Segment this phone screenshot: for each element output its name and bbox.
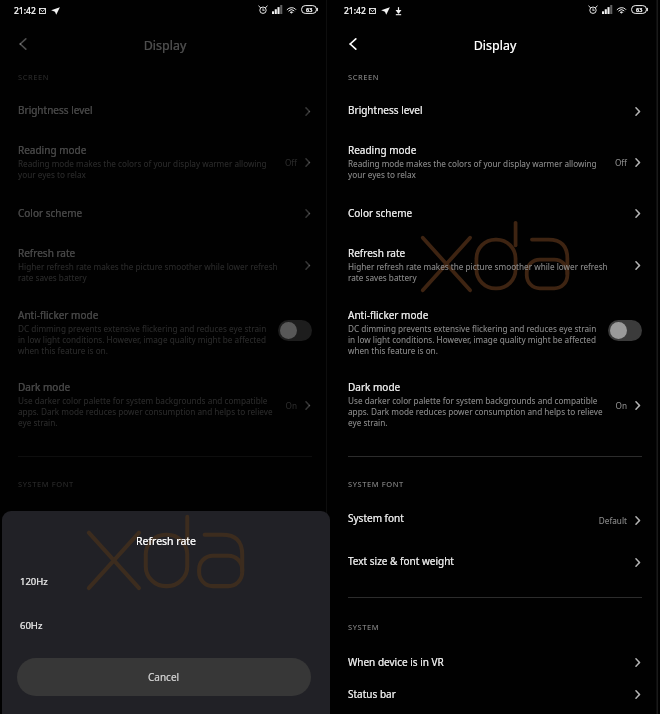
staticText: Reading mode makes the colors of your di…	[348, 158, 597, 180]
staticText: DC dimming prevents extensive flickering…	[18, 323, 267, 356]
button[interactable]: Dark mode	[330, 380, 660, 430]
staticText: SCREEN	[18, 72, 50, 82]
button[interactable]: Toggle Anti-flicker mode	[278, 320, 312, 341]
staticText: 60Hz	[20, 619, 43, 632]
staticText: Color scheme	[348, 206, 413, 220]
staticText: 21:42	[344, 5, 366, 17]
staticText: Dark mode	[348, 380, 401, 394]
staticText: Off	[580, 157, 627, 168]
staticText: On	[580, 400, 627, 411]
staticText: SYSTEM	[348, 622, 380, 632]
staticText: Display	[0, 37, 330, 54]
staticText: Higher refresh rate makes the picture sm…	[348, 261, 608, 283]
button[interactable]: Back	[9, 30, 36, 57]
staticText: Use darker color palette for system back…	[348, 395, 603, 428]
button[interactable]: Anti-flicker mode	[0, 308, 330, 358]
staticText: SYSTEM	[18, 622, 50, 632]
button[interactable]: Cancel	[17, 658, 311, 696]
button[interactable]: Refresh rate	[330, 246, 660, 284]
staticText: Reading mode makes the colors of your di…	[18, 158, 267, 180]
button[interactable]: System font	[330, 511, 660, 533]
staticText: Refresh rate	[18, 246, 76, 260]
staticText: SYSTEM FONT	[18, 479, 74, 489]
button[interactable]: Text size & font weight	[330, 554, 660, 576]
staticText: SCREEN	[348, 72, 380, 82]
button[interactable]: Reading mode	[330, 143, 660, 181]
button[interactable]: Color scheme	[0, 206, 330, 228]
staticText: 63	[306, 6, 313, 13]
button[interactable]: Text size & font weight	[0, 554, 330, 576]
staticText: Cancel	[148, 670, 180, 684]
staticText: Text size & font weight	[18, 554, 124, 568]
staticText: Off	[250, 157, 297, 168]
staticText: Anti-flicker mode	[348, 308, 429, 322]
staticText: Reading mode	[348, 143, 417, 157]
staticText: Refresh rate	[348, 246, 406, 260]
button[interactable]: Back	[339, 30, 366, 57]
staticText: Text size & font weight	[348, 554, 454, 568]
staticText: 120Hz	[20, 575, 48, 588]
button[interactable]: Brightness level	[330, 103, 660, 127]
staticText: When device is in VR	[348, 655, 444, 669]
button[interactable]: When device is in VR	[0, 655, 330, 677]
button[interactable]: Reading mode	[0, 143, 330, 181]
button[interactable]: Status bar	[330, 687, 660, 709]
staticText: Display	[330, 37, 660, 54]
button[interactable]: Toggle Anti-flicker mode	[608, 320, 642, 341]
staticText: 63	[636, 6, 643, 13]
button[interactable]: Dark mode	[0, 380, 330, 430]
staticText: Refresh rate	[2, 534, 330, 548]
button[interactable]: Anti-flicker mode	[330, 308, 660, 358]
button[interactable]: Status bar	[0, 687, 330, 709]
staticText: Brightness level	[18, 103, 93, 117]
staticText: Default	[580, 515, 627, 526]
button[interactable]: When device is in VR	[330, 655, 660, 677]
staticText: Brightness level	[348, 103, 423, 117]
button[interactable]: Color scheme	[330, 206, 660, 228]
staticText: Color scheme	[18, 206, 83, 220]
staticText: Dark mode	[18, 380, 71, 394]
staticText: SYSTEM FONT	[348, 479, 404, 489]
staticText: Use darker color palette for system back…	[18, 395, 273, 428]
button[interactable]: 60Hz	[2, 608, 330, 642]
staticText: DC dimming prevents extensive flickering…	[348, 323, 597, 356]
button[interactable]: System font	[0, 511, 330, 533]
button[interactable]: Refresh rate	[0, 246, 330, 284]
staticText: When device is in VR	[18, 655, 114, 669]
staticText: Reading mode	[18, 143, 87, 157]
staticText: System font	[348, 511, 404, 525]
button[interactable]: 120Hz	[2, 564, 330, 598]
staticText: Status bar	[18, 687, 66, 701]
staticText: Anti-flicker mode	[18, 308, 99, 322]
staticText: Higher refresh rate makes the picture sm…	[18, 261, 278, 283]
button[interactable]: Brightness level	[0, 103, 330, 127]
staticText: Status bar	[348, 687, 396, 701]
staticText: 21:42	[14, 5, 36, 17]
staticText: On	[250, 400, 297, 411]
